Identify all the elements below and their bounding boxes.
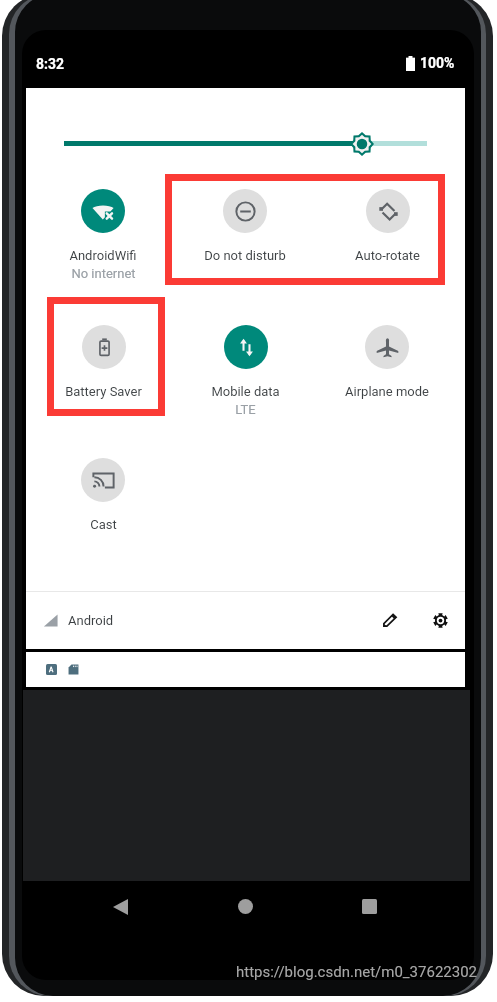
button[interactable]: Home [221,882,270,931]
button[interactable]: Recents [345,882,394,931]
button[interactable]: Mobile data [180,325,310,419]
staticText: Android [68,613,114,628]
staticText: 100% [420,55,455,71]
button[interactable]: Edit [368,598,412,642]
button[interactable]: Back [96,882,145,931]
staticText: 8:32 [36,56,65,72]
staticText: Cast [90,517,117,532]
button[interactable]: AndroidWifi [38,189,168,283]
staticText: No internet [71,266,136,281]
button[interactable]: Cast [38,458,168,532]
button[interactable]: Battery Saver [38,325,168,399]
staticText: Do not disturb [204,248,286,263]
staticText: Mobile data [211,384,280,399]
button[interactable]: Auto-rotate [322,189,452,263]
staticText: Auto-rotate [355,248,420,263]
staticText: AndroidWifi [69,248,137,263]
staticText: Battery Saver [65,384,142,399]
button[interactable]: Airplane mode [322,325,452,399]
button[interactable]: Do not disturb [180,189,310,263]
staticText: https://blog.csdn.net/m0_37622302 [236,963,478,981]
button[interactable]: Settings [418,598,462,642]
staticText: Airplane mode [345,384,429,399]
staticText: LTE [235,402,256,417]
